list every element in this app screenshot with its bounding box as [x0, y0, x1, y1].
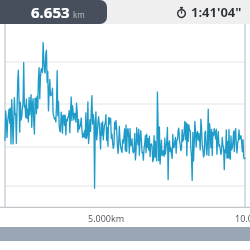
button[interactable]: 6.653 — [0, 0, 107, 24]
button[interactable]: Pace chart — [0, 24, 250, 208]
staticText: 6.653 — [31, 2, 70, 22]
staticText: 5.000km — [88, 212, 125, 224]
other: Elapsed time — [176, 7, 187, 18]
staticText: 1:41'04" — [191, 3, 242, 21]
staticText: 10.0 — [235, 212, 250, 224]
staticText: km — [73, 9, 85, 20]
button[interactable]: Elapsed time — [176, 0, 242, 24]
